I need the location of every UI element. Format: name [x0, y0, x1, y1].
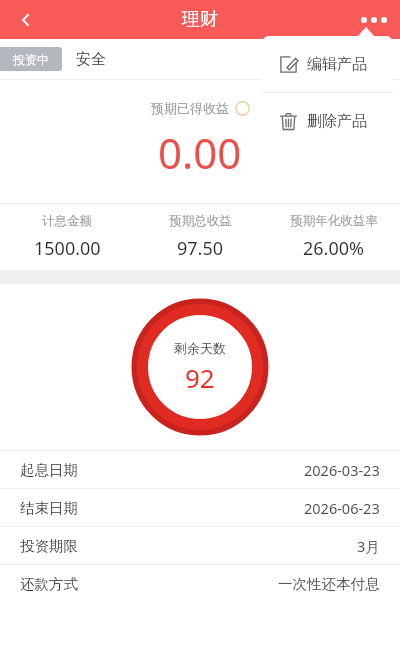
- staticText: 2026-03-23: [304, 460, 380, 480]
- staticText: 计息金额: [42, 213, 92, 229]
- staticText: 剩余天数: [174, 340, 226, 356]
- staticText: 2026-06-23: [304, 498, 380, 518]
- button[interactable]: 删除产品: [262, 93, 393, 149]
- button[interactable]: 预期总收益: [134, 204, 267, 270]
- button[interactable]: 起息日期: [0, 451, 400, 488]
- staticText: 一次性还本付息: [278, 575, 380, 593]
- staticText: 26.00%: [303, 236, 364, 261]
- staticText: 97.50: [177, 236, 224, 261]
- button[interactable]: 预期已得收益: [151, 100, 250, 116]
- staticText: 删除产品: [307, 112, 367, 131]
- staticText: 1500.00: [34, 236, 101, 261]
- button[interactable]: 投资期限: [0, 527, 400, 564]
- staticText: 起息日期: [20, 461, 78, 479]
- button[interactable]: Back: [0, 0, 52, 39]
- staticText: 3月: [357, 536, 380, 556]
- staticText: 预期年化收益率: [290, 213, 378, 229]
- button[interactable]: 计息金额: [0, 204, 134, 270]
- staticText: 投资中: [13, 52, 49, 67]
- staticText: 还款方式: [20, 575, 78, 593]
- staticText: 投资期限: [20, 537, 78, 555]
- staticText: 理财: [182, 8, 218, 31]
- staticText: 92: [185, 360, 215, 395]
- staticText: 编辑产品: [307, 55, 367, 74]
- button[interactable]: 预期年化收益率: [267, 204, 400, 270]
- button[interactable]: 结束日期: [0, 489, 400, 526]
- button[interactable]: More options: [348, 0, 400, 39]
- staticText: 预期已得收益: [151, 100, 229, 116]
- staticText: 结束日期: [20, 499, 78, 517]
- staticText: 安全: [76, 50, 106, 69]
- staticText: 预期总收益: [169, 213, 232, 229]
- button[interactable]: 投资中: [0, 47, 62, 71]
- staticText: 0.00: [158, 124, 242, 181]
- button[interactable]: 还款方式: [0, 565, 400, 602]
- button[interactable]: 编辑产品: [262, 36, 393, 92]
